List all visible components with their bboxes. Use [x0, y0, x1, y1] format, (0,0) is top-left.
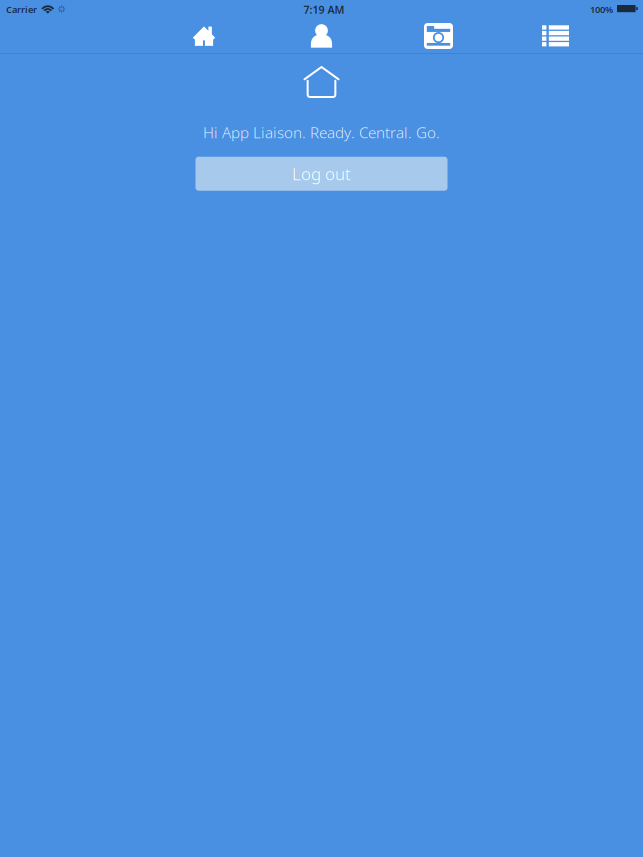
staticText: Carrier	[6, 3, 37, 16]
staticText: 7:19 AM	[303, 2, 344, 17]
staticText: Log out	[292, 162, 351, 185]
button[interactable]: Profile	[263, 21, 380, 51]
button[interactable]: List	[497, 21, 614, 51]
button[interactable]: Camera	[380, 21, 497, 51]
staticText: Hi App Liaison. Ready. Central. Go.	[203, 122, 440, 143]
button[interactable]: Home	[145, 21, 263, 51]
button[interactable]: Log out	[195, 157, 447, 191]
staticText: 100%	[590, 3, 613, 16]
